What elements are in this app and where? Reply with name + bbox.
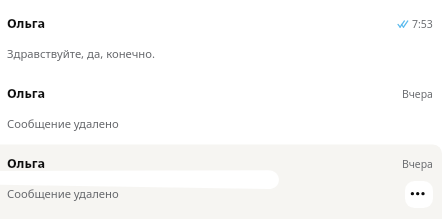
staticText: Сообщение удалено	[7, 186, 119, 201]
staticText: Здравствуйте, да, конечно.	[7, 46, 156, 61]
staticText: Ольга	[7, 155, 46, 172]
staticText: Вчера	[402, 157, 433, 171]
staticText: Ольга	[7, 15, 46, 32]
staticText: Вчера	[402, 87, 433, 101]
button[interactable]: Ольга	[0, 144, 446, 213]
staticText: 7:53	[412, 17, 433, 31]
staticText: Сообщение удалено	[7, 116, 119, 131]
button[interactable]: Ольга	[0, 4, 446, 73]
button[interactable]: Ольга	[0, 74, 446, 143]
button[interactable]: More options	[405, 181, 433, 208]
staticText: Ольга	[7, 85, 46, 102]
